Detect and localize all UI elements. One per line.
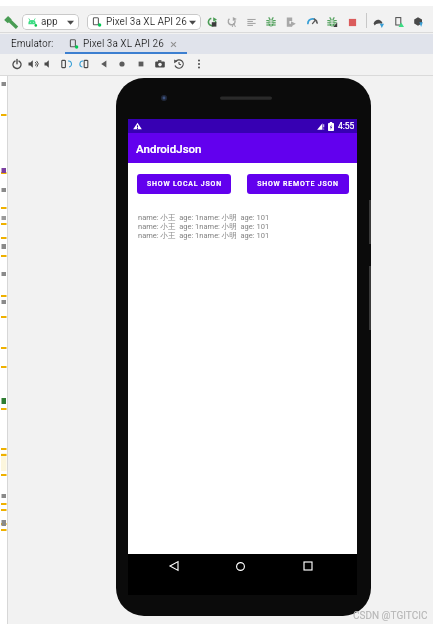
button[interactable]: Volume down <box>40 55 58 73</box>
button[interactable]: Build <box>1 10 23 32</box>
button[interactable]: app <box>22 14 79 30</box>
button[interactable]: More <box>190 55 208 73</box>
button[interactable]: AVD Manager <box>390 13 408 31</box>
staticText: name: 小王 age: 1name: 小明 age: 101 name: 小… <box>138 213 270 240</box>
button[interactable]: Volume up <box>24 55 42 73</box>
button[interactable]: Rotate left <box>57 55 75 73</box>
button[interactable]: Rotate right <box>75 55 93 73</box>
button[interactable]: Back <box>163 555 185 577</box>
staticText: SHOW REMOTE JSON <box>257 180 339 188</box>
button[interactable]: Recents <box>297 555 319 577</box>
staticText: AndroidJson <box>136 142 202 155</box>
staticText: SHOW LOCAL JSON <box>147 180 222 188</box>
button[interactable]: Pixel 3a XL API 26 <box>69 34 177 54</box>
button[interactable]: Profiler <box>303 13 322 32</box>
staticText: CSDN @TGITCIC <box>353 610 428 622</box>
button[interactable]: SHOW LOCAL JSON <box>137 174 231 194</box>
button[interactable]: Rerun <box>223 13 241 31</box>
button[interactable]: Sync project <box>369 13 388 32</box>
staticText: 4:55 <box>338 121 355 131</box>
button[interactable]: Screenshot <box>151 55 169 73</box>
staticText: app <box>41 16 58 28</box>
button[interactable]: Attach debugger <box>282 13 300 31</box>
staticText: Emulator: <box>11 38 54 50</box>
button[interactable]: Debug app <box>323 13 341 31</box>
button[interactable]: History <box>170 55 188 73</box>
button[interactable]: Power <box>8 55 26 73</box>
button[interactable]: Stop <box>344 14 361 31</box>
staticText: Pixel 3a XL API 26 <box>83 38 164 50</box>
staticText: Pixel 3a XL API 26 <box>106 16 187 28</box>
button[interactable]: Home <box>113 55 131 73</box>
button[interactable]: Back <box>95 55 113 73</box>
button[interactable]: Pixel 3a XL API 26 <box>87 14 201 30</box>
button[interactable]: Overview <box>132 55 150 73</box>
button[interactable]: Debug <box>262 13 280 31</box>
button[interactable]: Logcat <box>243 14 260 31</box>
button[interactable]: SDK Manager <box>410 13 428 31</box>
button[interactable]: SHOW REMOTE JSON <box>247 174 349 194</box>
button[interactable]: Run <box>203 13 221 31</box>
button[interactable]: Home <box>229 555 251 577</box>
